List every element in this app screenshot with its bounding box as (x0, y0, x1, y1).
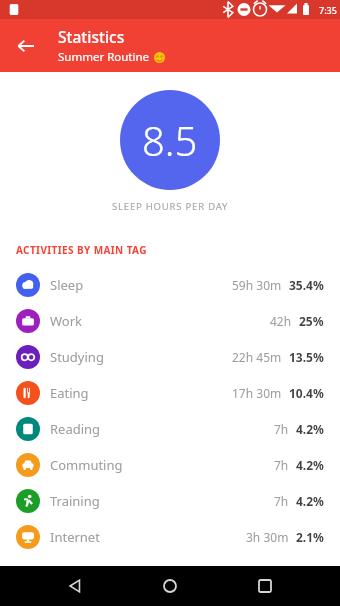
button[interactable]: Work (0, 303, 340, 339)
staticText: 22h 45m (232, 349, 282, 365)
staticText: 8.5 (142, 113, 198, 167)
button[interactable]: Back (55, 566, 95, 606)
button[interactable]: Studying (0, 339, 340, 375)
staticText: 25% (299, 313, 324, 329)
staticText: Summer Routine (58, 49, 150, 65)
staticText: 13.5% (289, 349, 324, 365)
button[interactable]: Recent apps (245, 566, 285, 606)
staticText: Internet (50, 528, 100, 546)
staticText: 59h 30m (232, 277, 282, 293)
staticText: Eating (50, 384, 89, 402)
staticText: Studying (50, 348, 104, 366)
staticText: Sleep (50, 276, 84, 294)
staticText: Statistics (58, 26, 125, 47)
button[interactable]: Eating (0, 375, 340, 411)
staticText: 10.4% (289, 385, 324, 401)
staticText: 3h 30m (246, 529, 289, 545)
staticText: Work (50, 312, 83, 330)
button[interactable]: Home (150, 566, 190, 606)
button[interactable]: Sleep (0, 267, 340, 303)
button[interactable]: 8.5 (120, 90, 220, 190)
staticText: Commuting (50, 456, 123, 474)
staticText: Training (50, 492, 100, 510)
staticText: 4.2% (296, 457, 324, 473)
staticText: 7:35 (319, 4, 337, 16)
staticText: 4.2% (296, 421, 324, 437)
button[interactable]: Internet (0, 519, 340, 555)
staticText: ACTIVITIES BY MAIN TAG (16, 243, 147, 257)
staticText: 17h 30m (232, 385, 282, 401)
staticText: 7h (274, 457, 289, 473)
button[interactable]: Reading (0, 411, 340, 447)
staticText: 2.1% (296, 529, 324, 545)
button[interactable]: Back (6, 26, 46, 66)
staticText: 7h (274, 421, 289, 437)
staticText: 42h (270, 313, 292, 329)
staticText: 7h (274, 493, 289, 509)
button[interactable]: Commuting (0, 447, 340, 483)
staticText: 4.2% (296, 493, 324, 509)
button[interactable]: Training (0, 483, 340, 519)
staticText: SLEEP HOURS PER DAY (112, 200, 229, 213)
staticText: 35.4% (289, 277, 324, 293)
staticText: Reading (50, 420, 101, 438)
